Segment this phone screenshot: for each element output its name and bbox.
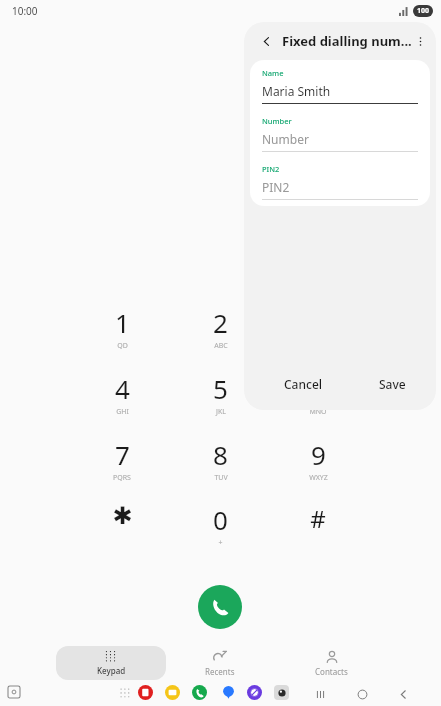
button[interactable]: More options: [412, 31, 428, 51]
button[interactable]: Keypad: [56, 646, 166, 680]
staticText: Save: [379, 376, 406, 392]
button[interactable]: App 2: [164, 684, 181, 701]
staticText: PIN2: [262, 164, 280, 174]
staticText: Number: [262, 131, 309, 147]
staticText: JKL: [216, 407, 226, 417]
staticText: 100: [417, 6, 430, 16]
button[interactable]: 8: [180, 437, 260, 493]
staticText: 1: [115, 305, 130, 340]
button[interactable]: Recents: [185, 646, 255, 680]
button[interactable]: 7: [82, 437, 162, 493]
staticText: 4: [115, 371, 130, 406]
staticText: 5: [213, 371, 228, 406]
button[interactable]: App 1: [137, 684, 154, 701]
button[interactable]: All apps: [116, 684, 133, 701]
button[interactable]: Messages: [220, 684, 237, 701]
button[interactable]: Camera: [273, 684, 290, 701]
staticText: MNO: [309, 407, 327, 417]
staticText: Name: [262, 68, 284, 78]
button[interactable]: 0: [180, 502, 260, 558]
staticText: ABC: [214, 341, 228, 351]
staticText: 8: [213, 437, 228, 472]
button[interactable]: Call: [198, 585, 242, 629]
staticText: 7: [115, 437, 130, 472]
staticText: PIN2: [262, 179, 290, 195]
button[interactable]: 6: [278, 371, 358, 427]
button[interactable]: #: [278, 502, 358, 558]
button[interactable]: Screenshot: [5, 683, 23, 701]
staticText: #: [310, 502, 326, 535]
button[interactable]: Browser: [246, 684, 263, 701]
staticText: Fixed dialling num...: [282, 32, 412, 50]
button[interactable]: Back: [256, 31, 276, 51]
staticText: TUV: [214, 473, 228, 483]
staticText: Maria Smith: [262, 83, 331, 99]
button[interactable]: Back: [393, 684, 413, 704]
button[interactable]: Home: [352, 684, 372, 704]
button[interactable]: Recent apps: [310, 684, 330, 704]
staticText: PQRS: [113, 473, 131, 483]
staticText: Cancel: [284, 376, 323, 392]
button[interactable]: Cancel: [284, 376, 323, 392]
staticText: +: [218, 538, 223, 548]
staticText: 0: [213, 502, 228, 537]
staticText: QD: [117, 341, 128, 351]
staticText: WXYZ: [309, 473, 328, 483]
staticText: Contacts: [315, 666, 348, 677]
staticText: 10:00: [12, 4, 38, 18]
staticText: 6: [311, 371, 326, 406]
staticText: GHI: [116, 407, 129, 417]
staticText: ✱: [112, 502, 133, 530]
button[interactable]: 9: [278, 437, 358, 493]
button[interactable]: Save: [379, 376, 406, 392]
staticText: Number: [262, 116, 292, 126]
button[interactable]: 5: [180, 371, 260, 427]
button[interactable]: 2: [180, 305, 260, 361]
button[interactable]: Phone: [191, 684, 208, 701]
staticText: Keypad: [97, 665, 126, 676]
button[interactable]: 1: [82, 305, 162, 361]
staticText: 2: [213, 305, 228, 340]
button[interactable]: Contacts: [296, 646, 366, 680]
staticText: Recents: [205, 666, 235, 677]
button[interactable]: ✱: [82, 502, 162, 558]
button[interactable]: 4: [82, 371, 162, 427]
staticText: 9: [311, 437, 326, 472]
